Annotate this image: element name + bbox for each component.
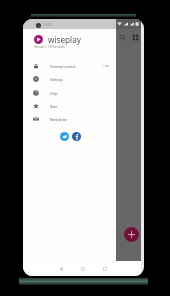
staticText: Rate bbox=[50, 104, 58, 109]
button[interactable]: Add bbox=[124, 227, 139, 242]
button[interactable]: Help bbox=[23, 86, 116, 100]
staticText: wiseplay bbox=[48, 34, 82, 45]
button[interactable]: Twitter bbox=[60, 132, 69, 141]
button[interactable]: Newsletter bbox=[23, 112, 116, 126]
staticText: Help bbox=[50, 91, 58, 96]
button[interactable]: Recents bbox=[99, 263, 110, 274]
staticText: Version 1.1.0 Premium bbox=[34, 45, 65, 49]
button[interactable]: Facebook bbox=[72, 132, 81, 141]
staticText: Newsletter bbox=[50, 117, 68, 122]
button[interactable]: Grid view bbox=[130, 32, 141, 43]
button[interactable]: Parental control bbox=[23, 59, 116, 73]
button[interactable]: Search bbox=[117, 32, 128, 43]
button[interactable]: Home bbox=[77, 263, 88, 274]
staticText: 11:32 bbox=[44, 23, 52, 27]
button[interactable]: Rate bbox=[23, 99, 116, 113]
button[interactable]: Back bbox=[55, 263, 66, 274]
staticText: Parental control bbox=[50, 64, 76, 69]
button[interactable]: Settings bbox=[23, 72, 116, 86]
staticText: Settings bbox=[50, 77, 63, 82]
